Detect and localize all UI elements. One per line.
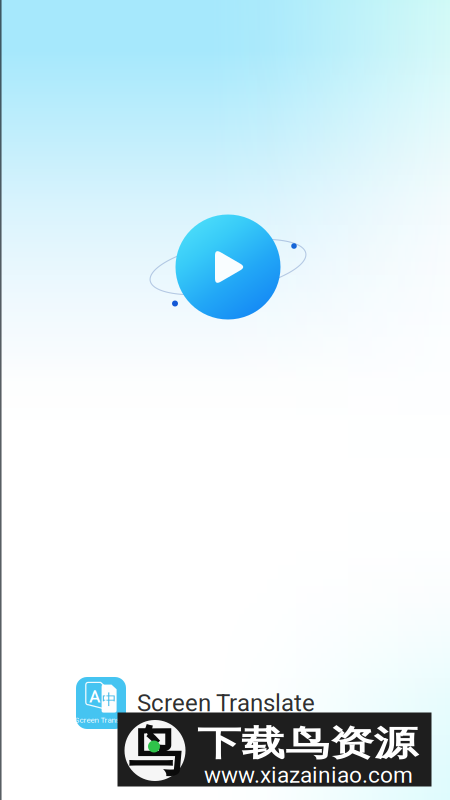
staticText: 中 (102, 690, 117, 708)
staticText: A (89, 686, 100, 707)
staticText: Screen Translate (137, 689, 315, 717)
staticText: www.xiazainiao.com (204, 762, 413, 788)
staticText: 下载鸟资源 (220, 722, 395, 765)
staticText: Screen Transla (74, 715, 125, 725)
staticText: 鸟 (128, 719, 181, 784)
button[interactable]: 中 (0, 673, 450, 733)
